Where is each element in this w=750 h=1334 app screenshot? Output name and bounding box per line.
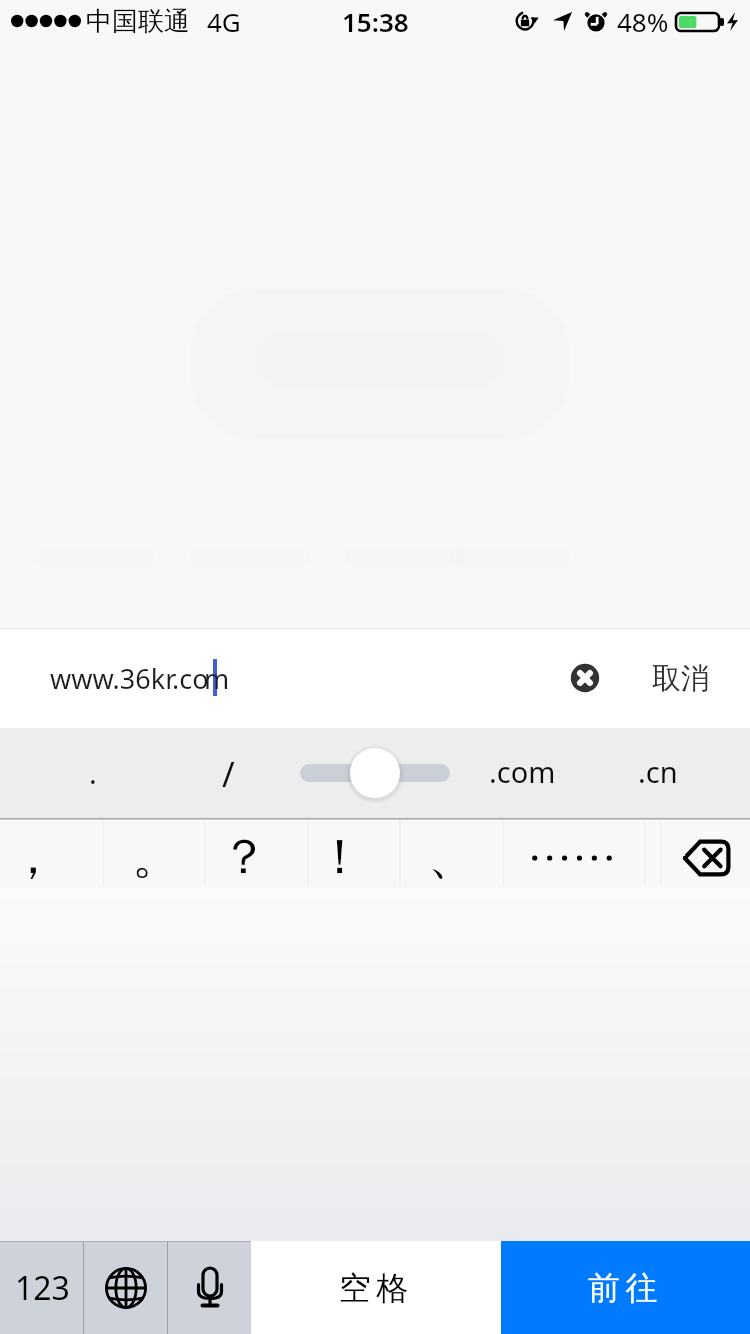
staticText: .: [89, 753, 97, 792]
button[interactable]: 123: [0, 1241, 83, 1334]
staticText: ！: [316, 827, 364, 887]
button[interactable]: 、: [400, 818, 503, 888]
button[interactable]: /: [183, 728, 275, 818]
staticText: .cn: [638, 752, 678, 791]
button[interactable]: 空格: [251, 1241, 501, 1334]
staticText: m: [204, 660, 230, 697]
staticText: 取消: [652, 660, 710, 697]
button[interactable]: Clear text: [554, 628, 616, 728]
staticText: .com: [489, 752, 556, 791]
staticText: ？: [220, 827, 268, 887]
button[interactable]: ！: [308, 818, 400, 888]
button[interactable]: Backspace: [645, 818, 750, 888]
button[interactable]: .com: [475, 728, 609, 818]
button[interactable]: Keyboard handwriting slider: [275, 728, 475, 818]
staticText: 4G: [207, 4, 241, 39]
staticText: 空格: [339, 1268, 414, 1308]
button[interactable]: Voice input: [168, 1241, 251, 1334]
button[interactable]: 前往: [501, 1241, 750, 1334]
staticText: ，: [9, 827, 57, 887]
button[interactable]: ，: [0, 818, 103, 888]
staticText: 。: [132, 827, 180, 887]
staticText: /: [222, 751, 235, 797]
button[interactable]: .: [0, 728, 183, 818]
staticText: 15:38: [342, 4, 409, 39]
staticText: 48%: [617, 4, 669, 39]
staticText: 、: [428, 827, 476, 887]
button[interactable]: ？: [205, 818, 308, 888]
staticText: 123: [15, 1266, 70, 1310]
staticText: 中国联通: [86, 5, 190, 38]
button[interactable]: .cn: [609, 728, 750, 818]
button[interactable]: Change keyboard language: [84, 1241, 167, 1334]
staticText: 前往: [588, 1268, 663, 1308]
button[interactable]: 。: [103, 818, 205, 888]
staticText: www.36kr.co: [50, 660, 209, 697]
button[interactable]: [503, 818, 645, 888]
button[interactable]: 取消: [652, 628, 710, 728]
